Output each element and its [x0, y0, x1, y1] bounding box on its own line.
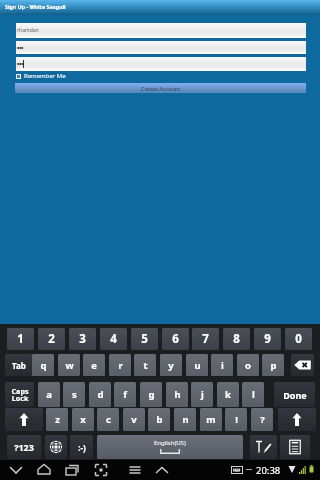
button[interactable]: Clipboard	[280, 435, 310, 459]
button[interactable]: Handwriting	[250, 435, 277, 459]
button[interactable]: Done	[274, 382, 315, 407]
staticText: ?	[260, 413, 265, 426]
button[interactable]: s	[63, 382, 85, 407]
staticText: s	[72, 388, 77, 401]
staticText: Create Account	[141, 85, 181, 92]
staticText: v	[131, 413, 137, 426]
button[interactable]: m	[200, 408, 222, 431]
button[interactable]: 4	[100, 328, 127, 350]
staticText: r	[118, 359, 123, 372]
staticText: j	[201, 388, 204, 401]
button[interactable]: Tab	[5, 354, 32, 376]
button[interactable]: Recent apps	[61, 460, 83, 480]
button[interactable]: 3	[69, 328, 96, 350]
button[interactable]: Space	[97, 435, 243, 459]
button[interactable]: e	[83, 354, 105, 376]
staticText: 7	[202, 331, 209, 347]
staticText: 6	[172, 331, 179, 347]
button[interactable]: Caps Lock	[5, 382, 34, 407]
button[interactable]: q	[32, 354, 54, 376]
button[interactable]: Create Account	[15, 83, 306, 93]
button[interactable]: i	[211, 354, 233, 376]
button[interactable]: p	[262, 354, 284, 376]
staticText: 1	[17, 331, 24, 347]
button[interactable]: y	[160, 354, 182, 376]
button[interactable]	[16, 57, 306, 71]
button[interactable]: u	[186, 354, 208, 376]
button[interactable]: x	[72, 408, 94, 431]
button[interactable]: Backspace	[291, 354, 314, 376]
staticText: m	[206, 413, 216, 426]
button[interactable]: 7	[192, 328, 219, 350]
staticText: ?123	[14, 441, 34, 453]
staticText: y	[168, 359, 174, 372]
button[interactable]: a	[38, 382, 60, 407]
button[interactable]: Shift	[278, 408, 316, 431]
staticText: Remember Me	[24, 72, 66, 80]
button[interactable]: n	[174, 408, 196, 431]
button[interactable]: ?	[251, 408, 273, 431]
staticText: p	[270, 359, 277, 372]
button[interactable]: l	[242, 382, 264, 407]
staticText: u	[194, 359, 201, 372]
staticText: w	[65, 359, 74, 372]
staticText: c	[106, 413, 111, 426]
button[interactable]: o	[237, 354, 259, 376]
button[interactable]: ?123	[7, 435, 41, 459]
button[interactable]: c	[97, 408, 119, 431]
button[interactable]: f	[114, 382, 136, 407]
staticText: 8	[233, 331, 240, 347]
button[interactable]: !	[225, 408, 247, 431]
staticText: i	[221, 359, 224, 372]
staticText: d	[97, 388, 104, 401]
staticText: b	[156, 413, 163, 426]
button[interactable]: 6	[162, 328, 189, 350]
staticText: o	[245, 359, 251, 372]
staticText: 20:38	[256, 464, 281, 477]
button[interactable]: r	[109, 354, 131, 376]
button[interactable]: Remember Me	[16, 72, 66, 80]
staticText: 3	[79, 331, 86, 347]
button[interactable]: 9	[254, 328, 281, 350]
button[interactable]: 0	[285, 328, 312, 350]
button[interactable]: Hide keyboard	[151, 460, 173, 480]
button[interactable]: k	[217, 382, 239, 407]
button[interactable]: rhamdan	[16, 23, 306, 38]
button[interactable]: w	[58, 354, 80, 376]
staticText: n	[182, 413, 189, 426]
staticText: 9	[264, 331, 271, 347]
staticText: 4	[110, 331, 117, 347]
button[interactable]: Menu	[124, 460, 146, 480]
staticText: Caps Lock	[11, 386, 29, 404]
staticText: rhamdan	[17, 27, 39, 34]
button[interactable]: v	[123, 408, 145, 431]
staticText: h	[174, 388, 181, 401]
button[interactable]: Home	[33, 460, 55, 480]
button[interactable]: Change language	[45, 435, 67, 459]
staticText: 5	[141, 331, 148, 347]
button[interactable]: 2	[38, 328, 65, 350]
staticText: English(US)	[154, 439, 186, 447]
button[interactable]: z	[46, 408, 68, 431]
staticText: !	[235, 413, 238, 426]
button[interactable]: h	[166, 382, 188, 407]
staticText: e	[91, 359, 97, 372]
button[interactable]: d	[89, 382, 111, 407]
button[interactable]: b	[148, 408, 170, 431]
button[interactable]: t	[134, 354, 156, 376]
staticText: 2	[48, 331, 55, 347]
staticText: Sign Up - White Seagull	[5, 3, 66, 10]
staticText: q	[40, 359, 47, 372]
button[interactable]: g	[140, 382, 162, 407]
button[interactable]: 8	[223, 328, 250, 350]
button[interactable]: 1	[7, 328, 34, 350]
button[interactable]: :-)	[70, 435, 93, 459]
staticText: 0	[295, 331, 302, 347]
button[interactable]: Screenshot	[90, 460, 112, 480]
button[interactable]	[16, 41, 306, 54]
button[interactable]: Back	[5, 460, 27, 480]
button[interactable]: j	[191, 382, 213, 407]
button[interactable]: 5	[131, 328, 158, 350]
button[interactable]: Shift	[5, 408, 43, 431]
staticText: l	[252, 388, 255, 401]
